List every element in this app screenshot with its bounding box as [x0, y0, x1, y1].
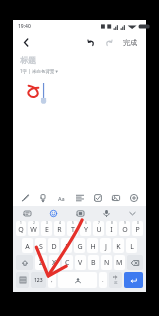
staticText: 8	[111, 221, 113, 225]
staticText: F	[65, 242, 69, 252]
staticText: W	[30, 225, 37, 235]
button[interactable]: F	[61, 238, 72, 253]
staticText: 19:40	[18, 23, 31, 30]
button[interactable]: D	[48, 238, 59, 253]
button[interactable]: Backspace	[127, 255, 143, 270]
staticText: U	[96, 225, 102, 235]
button[interactable]: Clipboard	[74, 207, 86, 219]
staticText: B	[91, 258, 96, 268]
staticText: N	[104, 258, 110, 268]
staticText: Q	[18, 225, 24, 235]
button[interactable]: Space	[58, 272, 97, 288]
button[interactable]: X	[49, 255, 60, 270]
button[interactable]: B	[88, 255, 99, 270]
button[interactable]: 完成	[120, 36, 140, 49]
button[interactable]: G	[74, 238, 85, 253]
staticText: 123	[34, 277, 43, 284]
staticText: T	[71, 225, 75, 235]
button[interactable]: 4	[54, 221, 65, 236]
staticText: 英	[114, 281, 118, 285]
staticText: R	[57, 225, 62, 235]
button[interactable]: Voice input	[100, 207, 112, 219]
button[interactable]: 6	[80, 221, 91, 236]
button[interactable]: Shift	[16, 255, 33, 270]
button[interactable]: K	[113, 238, 124, 253]
staticText: D	[51, 242, 57, 252]
button[interactable]: Undo	[83, 35, 98, 50]
staticText: 1字 | 米白色背景 ▾	[20, 68, 58, 74]
staticText: ,	[51, 276, 53, 284]
staticText: Aa	[58, 195, 65, 202]
button[interactable]: C	[62, 255, 73, 270]
staticText: G	[77, 242, 83, 252]
staticText: 完成	[123, 38, 137, 47]
button[interactable]: J	[100, 238, 111, 253]
staticText: H	[90, 242, 96, 252]
button[interactable]: Checklist	[90, 190, 106, 206]
staticText: X	[52, 258, 57, 268]
button[interactable]: Emoji	[47, 207, 59, 219]
staticText: I	[110, 225, 113, 235]
button[interactable]: ,	[48, 272, 56, 288]
staticText: Z	[39, 258, 44, 268]
staticText: M	[116, 258, 123, 268]
staticText: 中	[113, 275, 118, 281]
button[interactable]: Chinese English toggle	[109, 272, 122, 288]
button[interactable]: 8	[106, 221, 117, 236]
staticText: E	[45, 225, 49, 235]
staticText: L	[130, 242, 134, 252]
staticText: K	[116, 242, 121, 252]
button[interactable]: Redo	[101, 35, 116, 50]
button[interactable]: L	[126, 238, 137, 253]
staticText: 6	[85, 221, 87, 225]
staticText: 4	[59, 221, 61, 225]
button[interactable]: 3	[41, 221, 52, 236]
staticText: V	[78, 258, 83, 268]
staticText: A	[25, 242, 30, 252]
button[interactable]: A	[22, 238, 33, 253]
button[interactable]: 5	[67, 221, 78, 236]
staticText: O	[122, 225, 128, 235]
staticText: 0	[137, 221, 139, 225]
button[interactable]: N	[101, 255, 112, 270]
button[interactable]: Text style	[53, 190, 69, 206]
staticText: C	[65, 258, 70, 268]
staticText: 3	[46, 221, 48, 225]
button[interactable]: Pen	[17, 190, 33, 206]
button[interactable]: 0	[132, 221, 143, 236]
button[interactable]: H	[87, 238, 98, 253]
staticText: 7	[98, 221, 100, 225]
staticText: 9	[124, 221, 126, 225]
staticText: J	[105, 242, 107, 252]
staticText: S	[39, 242, 43, 252]
button[interactable]: 2	[28, 221, 39, 236]
staticText: 2	[33, 221, 35, 225]
staticText: .	[102, 276, 104, 284]
button[interactable]: 123	[31, 272, 46, 288]
button[interactable]: 9	[119, 221, 130, 236]
button[interactable]: Sticker	[21, 207, 33, 219]
button[interactable]: V	[75, 255, 86, 270]
button[interactable]: Z	[35, 255, 47, 270]
staticText: 1	[20, 221, 22, 225]
button[interactable]: Switch keyboard layout	[16, 272, 29, 288]
staticText: 标题	[20, 55, 36, 65]
button[interactable]: .	[99, 272, 107, 288]
button[interactable]: Highlighter	[35, 190, 51, 206]
button[interactable]: Enter	[124, 272, 143, 288]
button[interactable]: Back	[19, 35, 33, 49]
button[interactable]: Collapse keyboard	[126, 207, 138, 219]
staticText: 5	[72, 221, 74, 225]
button[interactable]: Add	[126, 190, 142, 206]
button[interactable]: S	[35, 238, 46, 253]
button[interactable]: Image	[108, 190, 124, 206]
button[interactable]: 7	[93, 221, 104, 236]
staticText: P	[135, 225, 140, 235]
button[interactable]: Align	[72, 190, 88, 206]
button[interactable]: M	[114, 255, 125, 270]
button[interactable]: 1	[16, 221, 26, 236]
staticText: Y	[84, 225, 88, 235]
